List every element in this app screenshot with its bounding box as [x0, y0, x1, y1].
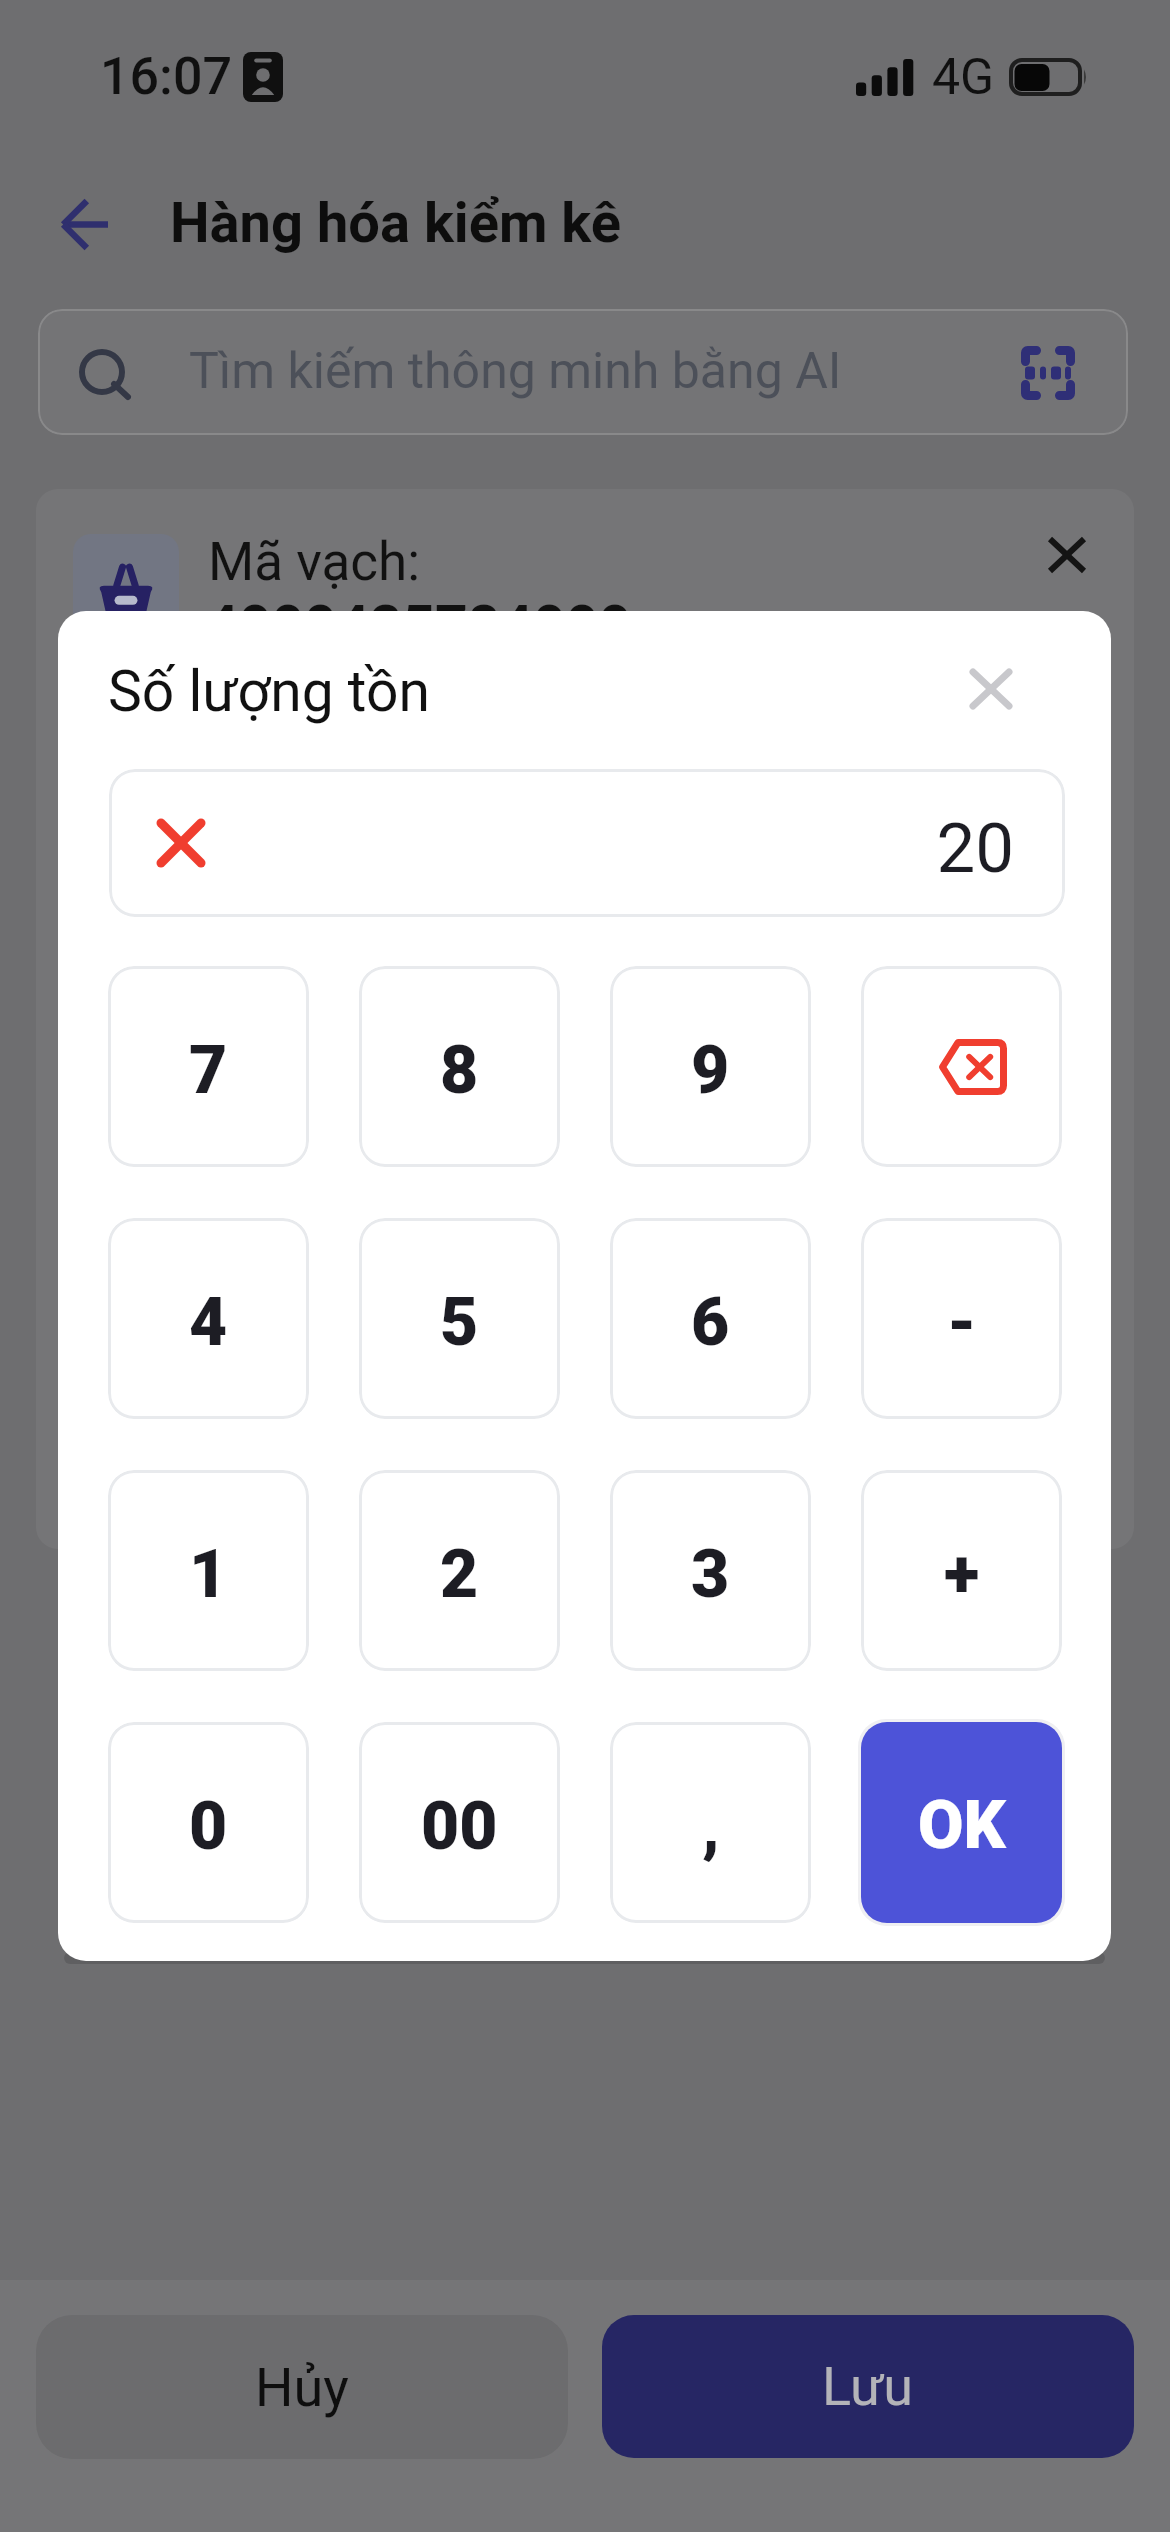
staticText: Tìm kiếm thông minh bằng AI: [189, 342, 842, 401]
staticText: Lưu: [822, 2355, 914, 2418]
button[interactable]: OK: [858, 1719, 1065, 1926]
staticText: 0: [189, 1788, 228, 1865]
button[interactable]: Close: [931, 629, 1051, 749]
button[interactable]: Remove item: [1007, 495, 1127, 615]
staticText: Hủy: [255, 2356, 349, 2419]
staticText: 1: [189, 1536, 228, 1613]
staticText: -: [947, 1284, 977, 1361]
button[interactable]: 1: [108, 1470, 309, 1671]
button[interactable]: 8: [359, 966, 560, 1167]
button[interactable]: 3: [610, 1470, 811, 1671]
staticText: Số lượng tồn: [108, 658, 430, 725]
staticText: 4G: [932, 48, 995, 107]
staticText: ,: [702, 1788, 720, 1865]
staticText: +: [944, 1536, 980, 1613]
button[interactable]: ,: [610, 1722, 811, 1923]
staticText: 20: [109, 808, 1014, 889]
button[interactable]: 0: [108, 1722, 309, 1923]
staticText: 00: [421, 1788, 498, 1865]
staticText: 3: [691, 1536, 730, 1613]
staticText: 6: [691, 1284, 730, 1361]
button[interactable]: 5: [359, 1218, 560, 1419]
staticText: 4000425784000: [206, 593, 632, 660]
button[interactable]: Back: [36, 176, 132, 272]
button[interactable]: 2: [359, 1470, 560, 1671]
staticText: Hàng hóa kiểm kê: [170, 190, 622, 256]
button[interactable]: 00: [359, 1722, 560, 1923]
button[interactable]: 9: [610, 966, 811, 1167]
button[interactable]: 7: [108, 966, 309, 1167]
staticText: 16:07: [100, 46, 233, 107]
button[interactable]: 6: [610, 1218, 811, 1419]
staticText: Mã vạch:: [208, 531, 421, 593]
staticText: 5: [440, 1284, 479, 1361]
staticText: 8: [440, 1032, 479, 1109]
button[interactable]: +: [861, 1470, 1062, 1671]
button[interactable]: 4: [108, 1218, 309, 1419]
staticText: 4: [189, 1284, 228, 1361]
staticText: OK: [918, 1787, 1006, 1864]
staticText: 9: [691, 1032, 730, 1109]
button[interactable]: Backspace: [861, 966, 1062, 1167]
button[interactable]: Hủy: [36, 2315, 568, 2459]
staticText: 7: [189, 1032, 228, 1109]
staticText: 2: [440, 1536, 479, 1613]
button[interactable]: Clear: [161, 823, 201, 863]
button[interactable]: -: [861, 1218, 1062, 1419]
button[interactable]: Tìm kiếm thông minh bằng AI: [38, 309, 1128, 435]
button[interactable]: Lưu: [602, 2315, 1134, 2458]
